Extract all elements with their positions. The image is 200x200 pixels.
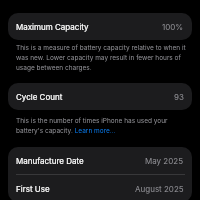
button[interactable]: First Use: [8, 175, 192, 200]
staticText: This is a measure of battery capacity re…: [16, 42, 187, 72]
button[interactable]: Manufacture Date: [8, 147, 192, 174]
button[interactable]: This is the number of times iPhone has u…: [0, 115, 200, 135]
button[interactable]: Cycle Count: [8, 83, 192, 110]
staticText: 93: [174, 92, 184, 102]
staticText: May 2025: [145, 156, 184, 166]
staticText: August 2025: [135, 184, 184, 194]
staticText: First Use: [16, 184, 50, 194]
button[interactable]: Maximum Capacity: [8, 13, 192, 40]
staticText: 100%: [162, 22, 184, 32]
staticText: Manufacture Date: [16, 156, 84, 166]
staticText: Cycle Count: [16, 92, 63, 102]
staticText: Maximum Capacity: [16, 22, 89, 32]
